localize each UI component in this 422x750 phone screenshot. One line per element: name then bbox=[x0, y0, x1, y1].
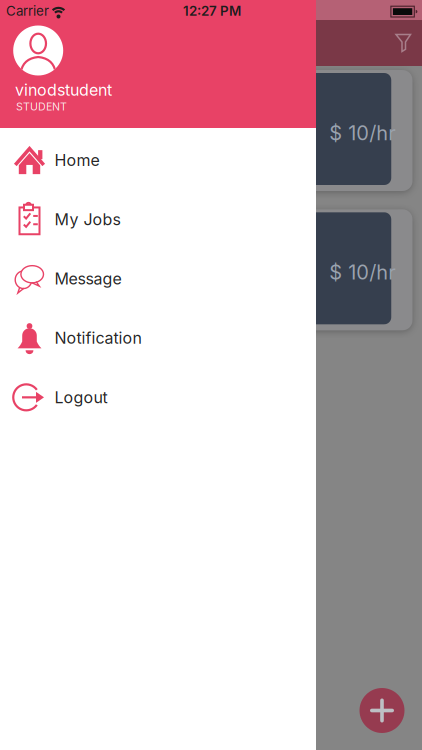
staticText: vinodstudent bbox=[15, 81, 112, 99]
button[interactable]: Logout bbox=[0, 371, 316, 423]
staticText: Home bbox=[54, 151, 99, 170]
staticText: $ 10/hr bbox=[329, 121, 395, 145]
staticText: Carrier bbox=[6, 3, 49, 19]
staticText: STUDENT bbox=[16, 100, 67, 113]
staticText: Notification bbox=[54, 329, 141, 347]
staticText: $ 10/hr bbox=[329, 260, 395, 284]
button[interactable]: Add bbox=[359, 688, 404, 733]
button[interactable]: Notification bbox=[0, 312, 316, 364]
button[interactable]: My Jobs bbox=[0, 193, 316, 245]
button[interactable]: Message bbox=[0, 253, 316, 305]
staticText: My Jobs bbox=[54, 210, 120, 229]
button[interactable]: Home bbox=[0, 134, 316, 186]
staticText: Message bbox=[54, 269, 121, 288]
staticText: 12:27 PM bbox=[183, 3, 241, 19]
button[interactable]: Filter bbox=[390, 30, 416, 56]
staticText: Logout bbox=[54, 388, 107, 407]
